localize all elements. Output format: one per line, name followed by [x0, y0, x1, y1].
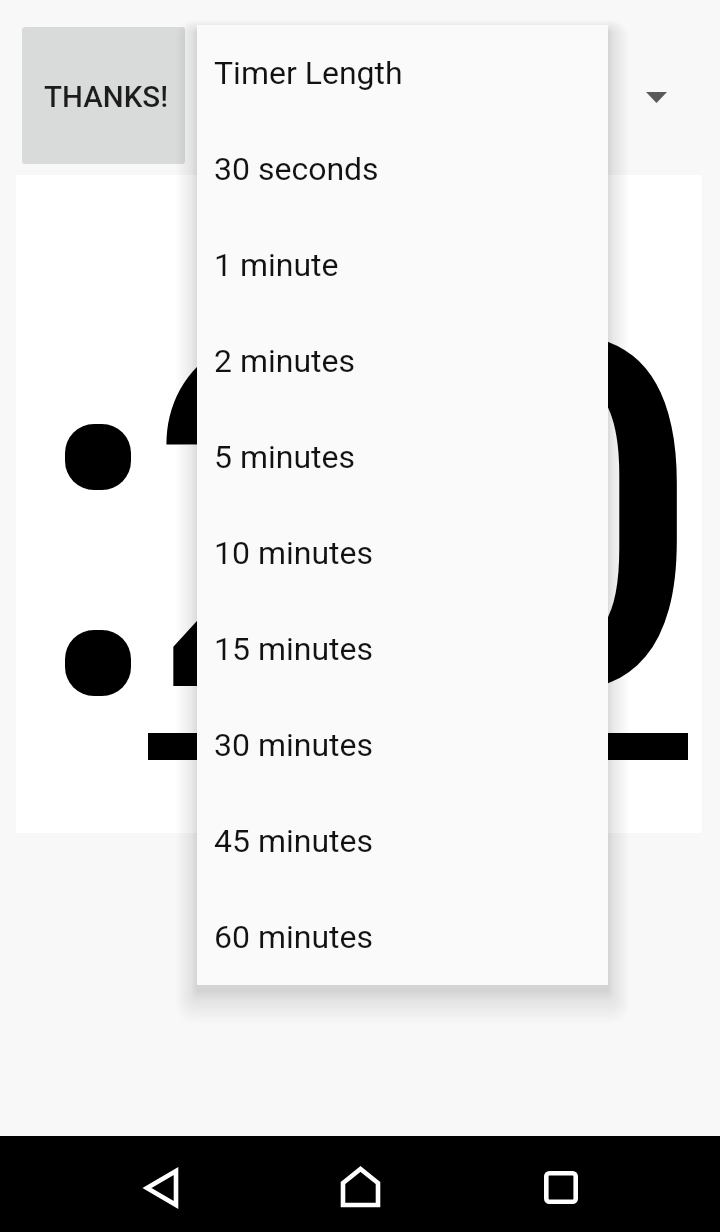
button[interactable]: 30 seconds: [197, 121, 608, 217]
staticText: 20: [147, 233, 702, 805]
button[interactable]: Show timer length options: [609, 50, 703, 144]
button[interactable]: Recent apps: [513, 1139, 609, 1232]
button[interactable]: 5 minutes: [197, 409, 608, 505]
staticText: 45 minutes: [214, 822, 374, 860]
button[interactable]: Home: [312, 1139, 408, 1232]
staticText: 30 seconds: [214, 150, 379, 188]
button[interactable]: 2 minutes: [197, 313, 608, 409]
staticText: THANKS!: [44, 80, 168, 115]
button[interactable]: 30 minutes: [197, 697, 608, 793]
button[interactable]: 45 minutes: [197, 793, 608, 889]
button[interactable]: Back: [113, 1140, 209, 1232]
staticText: Timer Length: [214, 54, 403, 92]
staticText: 1 minute: [214, 246, 339, 284]
button[interactable]: 60 minutes: [197, 889, 608, 985]
staticText: 2 minutes: [214, 342, 356, 380]
staticText: 10 minutes: [214, 534, 374, 572]
staticText: 60 minutes: [214, 918, 374, 956]
staticText: 15 minutes: [214, 630, 374, 668]
button[interactable]: Timer Length: [197, 25, 608, 121]
staticText: 5 minutes: [214, 438, 356, 476]
button[interactable]: 10 minutes: [197, 505, 608, 601]
staticText: 30 minutes: [214, 726, 374, 764]
button[interactable]: 1 minute: [197, 217, 608, 313]
button[interactable]: THANKS!: [22, 27, 185, 164]
button[interactable]: 15 minutes: [197, 601, 608, 697]
